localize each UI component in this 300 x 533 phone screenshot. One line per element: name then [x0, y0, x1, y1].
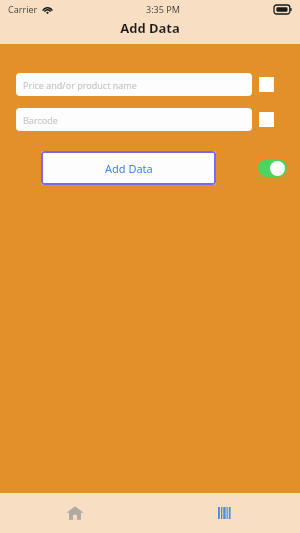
staticText: 3:35 PM [146, 3, 180, 15]
staticText: Add Data [105, 161, 153, 176]
staticText: Price and/or product name [23, 79, 137, 91]
button[interactable]: Barcode scanner [150, 493, 300, 533]
button[interactable]: Toggle [258, 159, 287, 177]
button[interactable]: Add Data [41, 151, 216, 185]
button[interactable]: Home [0, 493, 150, 533]
staticText: Carrier [8, 3, 38, 15]
staticText: Add Data [120, 19, 180, 37]
staticText: Barcode [23, 114, 58, 126]
button[interactable]: Price and/or product name [16, 73, 252, 96]
button[interactable]: Barcode [16, 108, 252, 131]
